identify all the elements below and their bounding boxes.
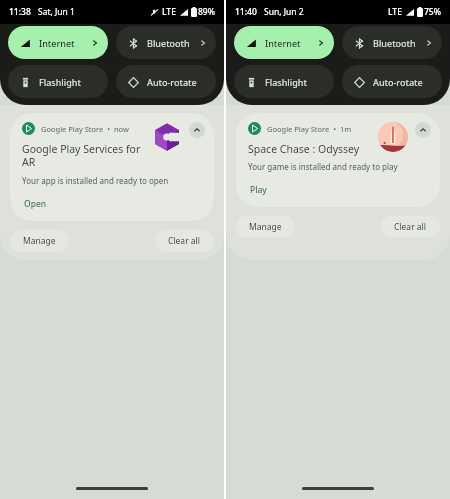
button[interactable]: Manage <box>10 230 69 252</box>
button[interactable]: Auto-rotate <box>342 65 442 98</box>
staticText: Clear all <box>394 221 427 233</box>
button[interactable]: Clear all <box>155 230 214 252</box>
staticText: Auto-rotate <box>373 76 423 88</box>
staticText: Sat, Jun 1 <box>38 6 75 18</box>
staticText: 75% <box>424 6 441 18</box>
staticText: Flashlight <box>265 76 307 88</box>
staticText: Manage <box>23 235 56 247</box>
staticText: Bluetooth <box>373 37 416 49</box>
button[interactable]: Open <box>22 197 49 211</box>
staticText: Internet <box>39 37 75 49</box>
staticText: Flashlight <box>39 76 81 88</box>
button[interactable]: Auto-rotate <box>116 65 216 98</box>
staticText: Your app is installed and ready to open <box>22 175 169 186</box>
staticText: Play <box>250 184 267 196</box>
button[interactable]: Play <box>248 183 269 197</box>
button[interactable]: Collapse notification <box>189 122 205 138</box>
staticText: Google Play Store • now <box>41 124 129 134</box>
staticText: 11:40 <box>235 6 257 18</box>
staticText: Google Play Services for AR <box>22 142 143 169</box>
button[interactable]: Collapse notification <box>415 122 431 138</box>
staticText: Internet <box>265 37 301 49</box>
staticText: Open <box>24 198 47 210</box>
staticText: Space Chase : Odyssey <box>248 142 360 156</box>
staticText: Sun, Jun 2 <box>264 6 304 18</box>
button[interactable]: Bluetooth <box>342 26 442 59</box>
staticText: LTE <box>388 6 402 18</box>
button[interactable]: Bluetooth <box>116 26 216 59</box>
button[interactable]: Flashlight <box>234 65 334 98</box>
staticText: Auto-rotate <box>147 76 197 88</box>
button[interactable]: Internet <box>234 26 334 59</box>
button[interactable]: Clear all <box>381 216 440 238</box>
button[interactable]: Flashlight <box>8 65 108 98</box>
staticText: 89% <box>198 6 215 18</box>
button[interactable]: Internet <box>8 26 108 59</box>
staticText: Your game is installed and ready to play <box>248 161 398 172</box>
button[interactable]: Manage <box>236 216 295 238</box>
staticText: Clear all <box>168 235 201 247</box>
staticText: 11:38 <box>9 6 31 18</box>
button[interactable]: Google Play Store • 1m <box>236 113 440 207</box>
staticText: Bluetooth <box>147 37 190 49</box>
staticText: Manage <box>249 221 282 233</box>
staticText: LTE <box>162 6 176 18</box>
staticText: Google Play Store • 1m <box>267 124 352 134</box>
button[interactable]: Google Play Store • now <box>10 113 214 221</box>
